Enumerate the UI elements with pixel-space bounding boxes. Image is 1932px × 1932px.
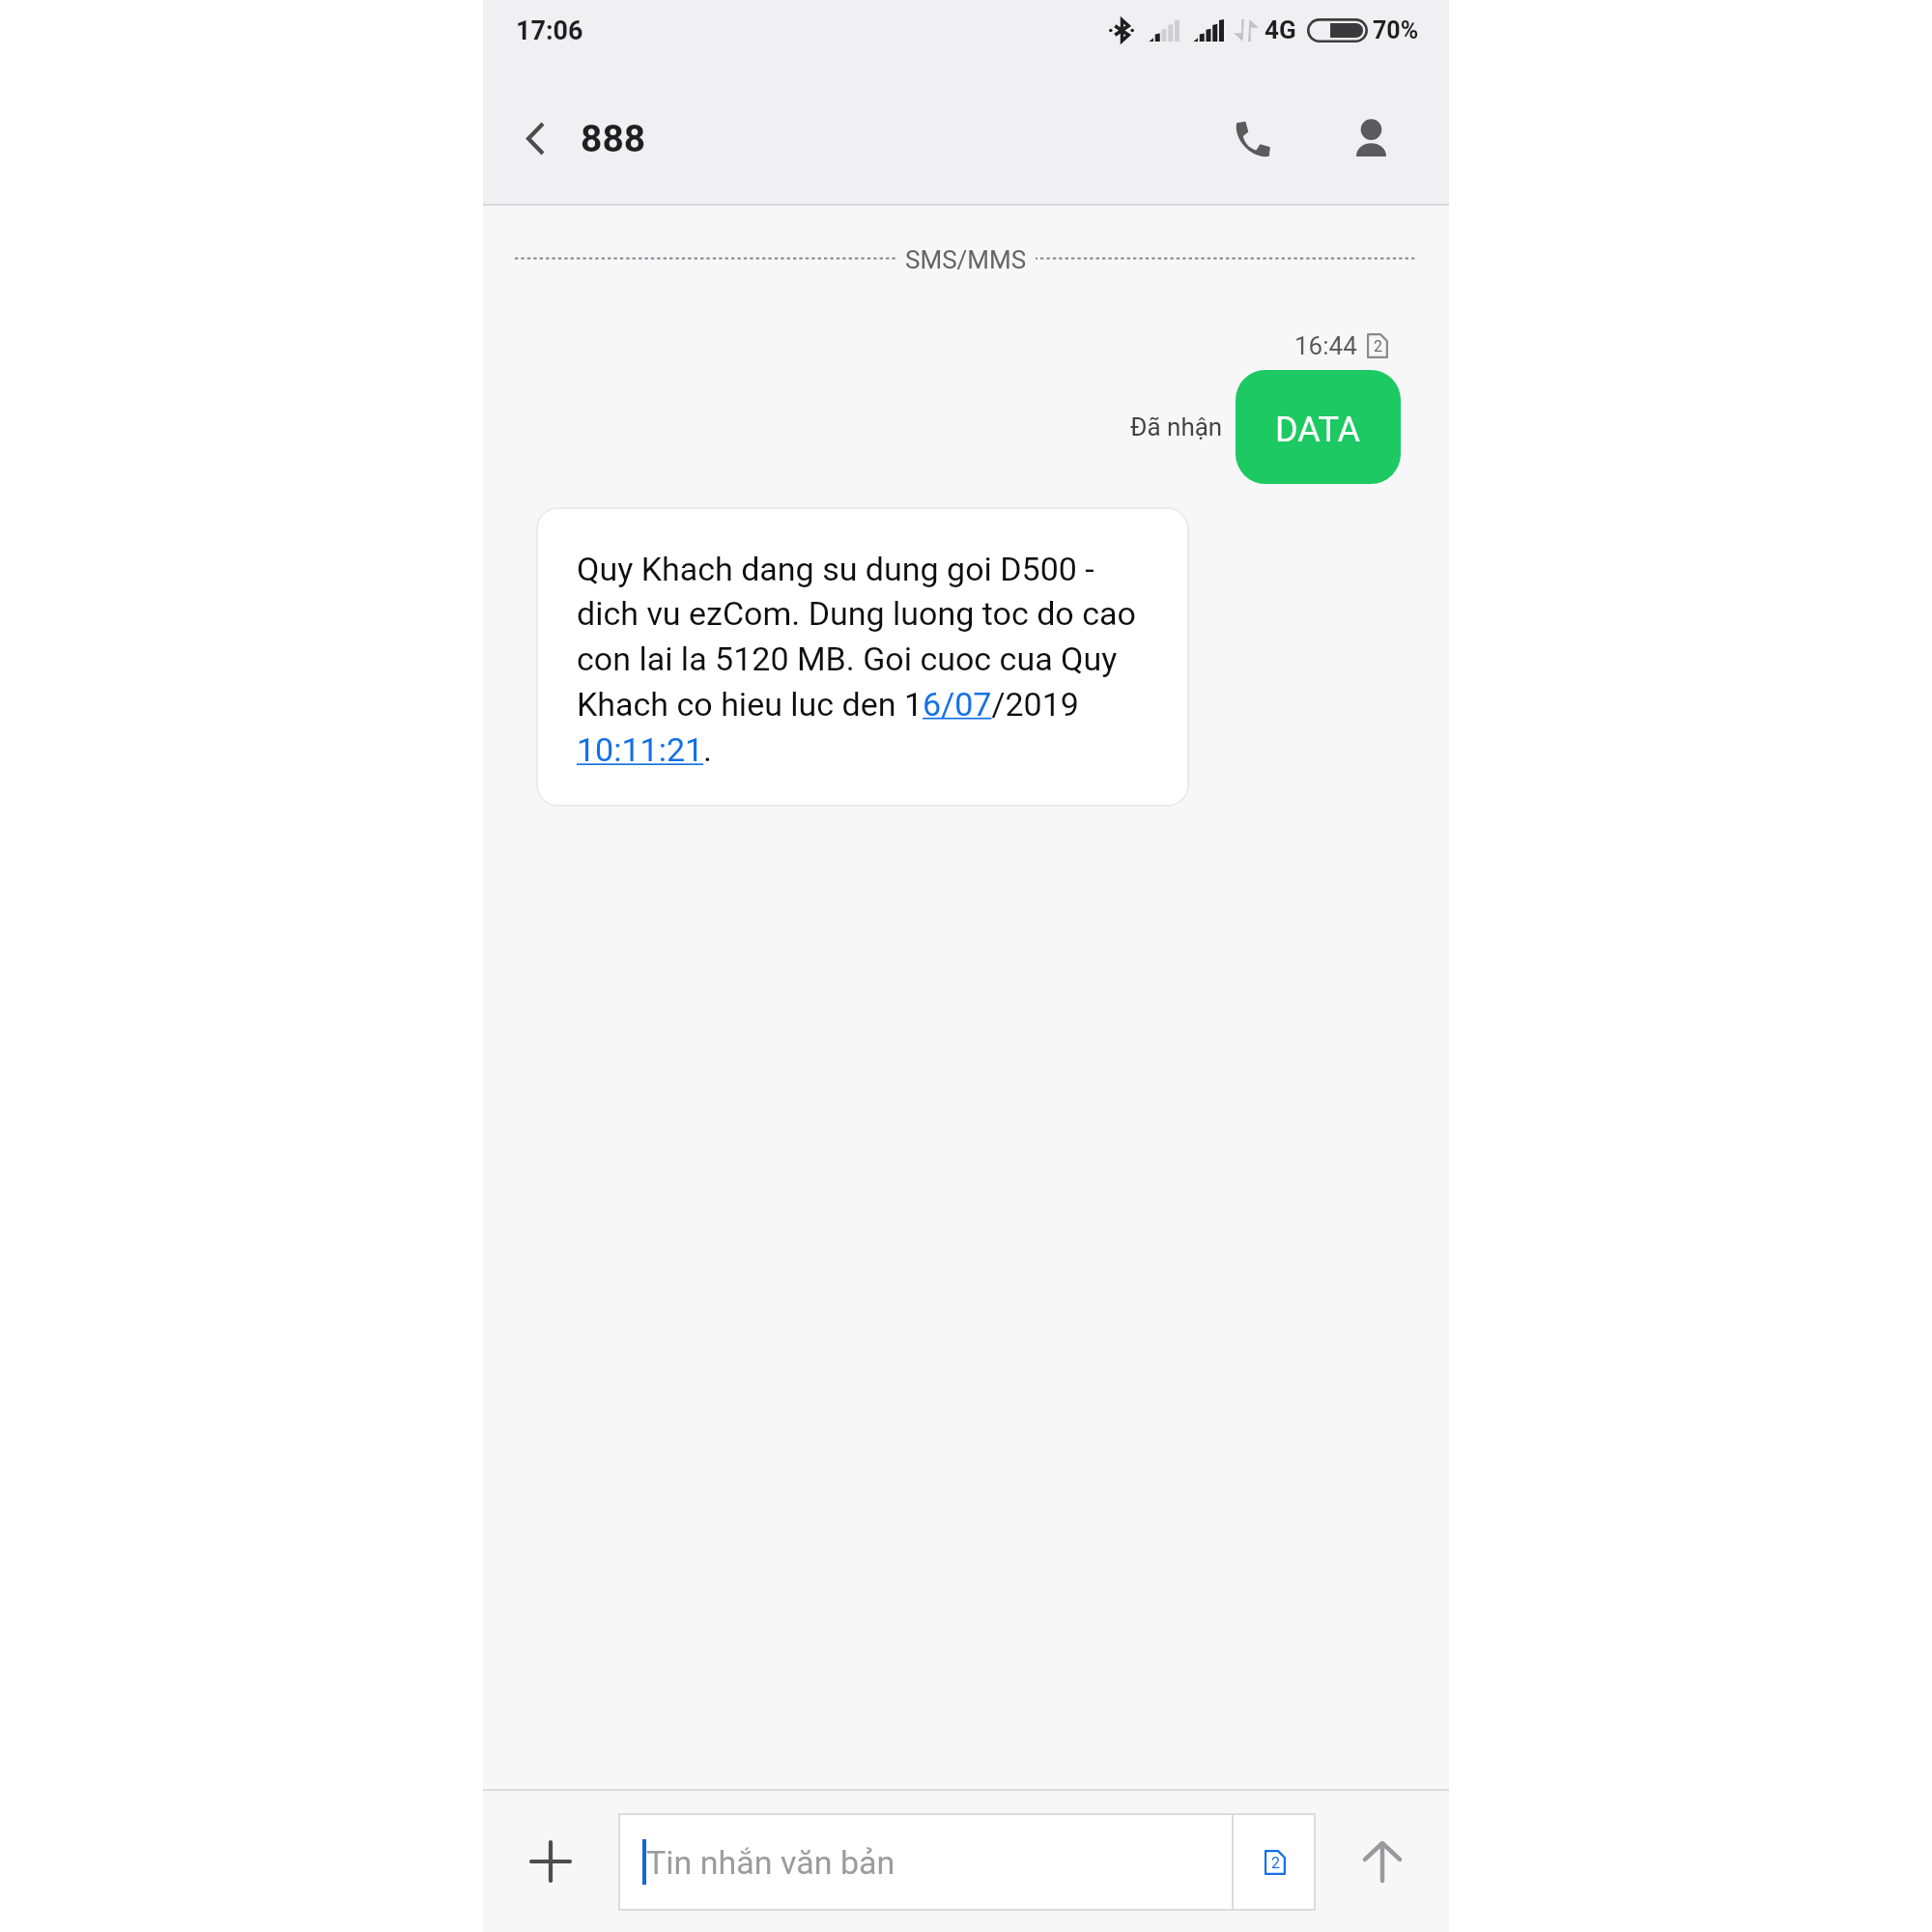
button[interactable]: Contact details xyxy=(1321,73,1421,204)
staticText: Đã nhận xyxy=(1130,412,1223,441)
button[interactable]: Quy Khach dang su dung goi D500 - dich v… xyxy=(536,507,1189,807)
staticText: 2 xyxy=(1271,1854,1280,1872)
staticText: 2 xyxy=(1374,337,1382,355)
staticText: 16:44 xyxy=(1294,331,1357,360)
button[interactable]: Back xyxy=(483,73,587,204)
button[interactable]: Call xyxy=(1185,73,1321,204)
staticText: 888 xyxy=(581,117,646,161)
staticText: Quy Khach dang su dung goi D500 - dich v… xyxy=(577,550,1147,770)
staticText: 4G xyxy=(1264,15,1296,44)
button[interactable]: DATA xyxy=(1236,370,1401,484)
button[interactable]: Tin nhắn văn bản xyxy=(618,1813,1232,1911)
button[interactable]: Add attachment xyxy=(483,1791,618,1932)
staticText: 70% xyxy=(1373,16,1419,44)
button[interactable]: SIM 2 xyxy=(1234,1813,1316,1911)
staticText: 17:06 xyxy=(516,15,583,46)
staticText: Tin nhắn văn bản xyxy=(646,1843,895,1882)
button[interactable]: Send xyxy=(1315,1791,1449,1932)
staticText: SMS/MMS xyxy=(905,245,1027,274)
staticText: DATA xyxy=(1275,410,1361,450)
